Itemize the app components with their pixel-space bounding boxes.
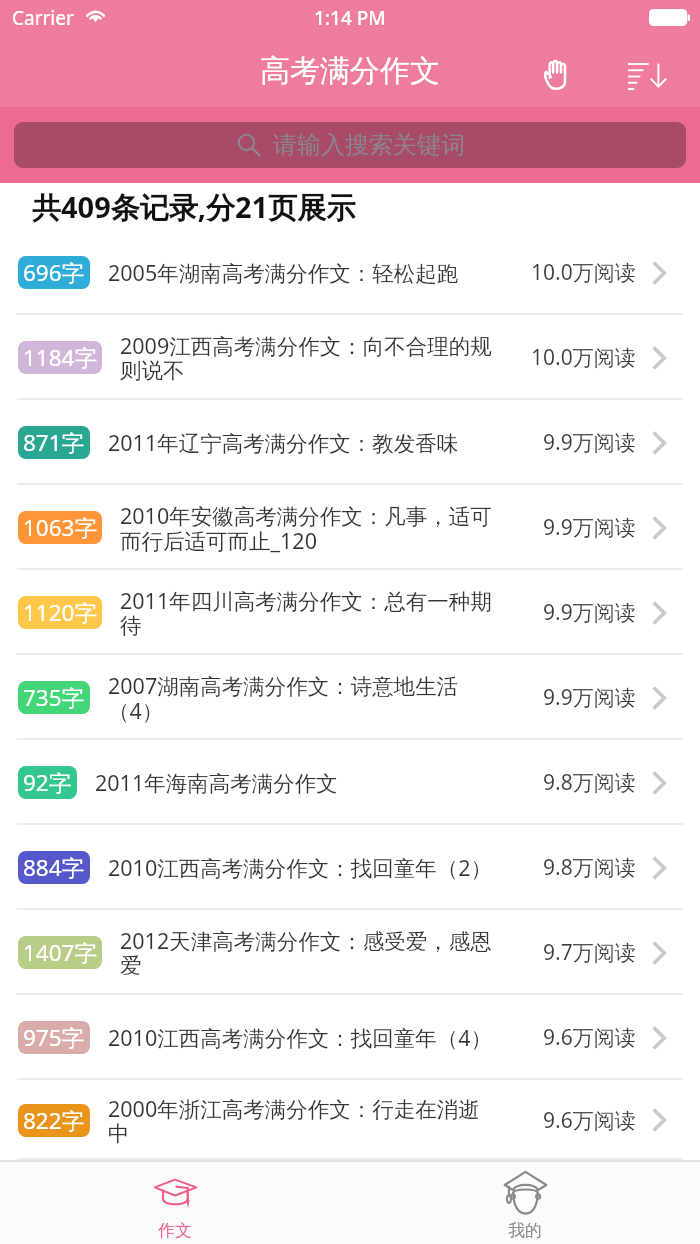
staticText: 9.8万阅读 xyxy=(543,853,636,882)
staticText: 作文 xyxy=(158,1220,192,1241)
staticText: 10.0万阅读 xyxy=(531,343,636,372)
staticText: 9.8万阅读 xyxy=(543,768,636,797)
staticText: 1407字 xyxy=(23,937,97,968)
staticText: 884字 xyxy=(23,852,85,883)
staticText: Carrier xyxy=(12,5,74,31)
staticText: 共409条记录,分21页展示 xyxy=(32,187,356,227)
staticText: 2010江西高考满分作文：找回童年（2） xyxy=(108,853,531,882)
staticText: 696字 xyxy=(23,257,85,288)
button[interactable]: 975字 xyxy=(0,995,700,1080)
staticText: 9.7万阅读 xyxy=(543,938,636,967)
staticText: 2010年安徽高考满分作文：凡事，适可 而行后适可而止_120 xyxy=(120,501,531,555)
staticText: 1184字 xyxy=(23,342,97,373)
staticText: 2009江西高考满分作文：向不合理的规 则说不 xyxy=(120,331,519,384)
staticText: 高考满分作文 xyxy=(260,52,440,90)
button[interactable]: Sort descending xyxy=(613,40,681,107)
button[interactable]: 我的 xyxy=(350,1162,700,1244)
staticText: 9.6万阅读 xyxy=(543,1023,636,1052)
staticText: 822字 xyxy=(23,1105,85,1136)
button[interactable]: 请输入搜索关键词 xyxy=(14,122,686,168)
staticText: 9.6万阅读 xyxy=(543,1106,636,1135)
staticText: 2000年浙江高考满分作文：行走在消逝 中 xyxy=(108,1094,531,1147)
staticText: 2011年辽宁高考满分作文：教发香味 xyxy=(108,428,531,457)
staticText: 871字 xyxy=(23,427,85,458)
staticText: 1063字 xyxy=(23,512,97,543)
staticText: 1:14 PM xyxy=(314,5,386,31)
staticText: 2011年四川高考满分作文：总有一种期 待 xyxy=(120,586,531,639)
button[interactable]: 作文 xyxy=(0,1162,350,1244)
staticText: 我的 xyxy=(508,1220,542,1241)
staticText: 9.9万阅读 xyxy=(543,428,636,457)
button[interactable]: 1407字 xyxy=(0,910,700,995)
staticText: 请输入搜索关键词 xyxy=(273,130,465,160)
button[interactable]: 735字 xyxy=(0,655,700,740)
button[interactable]: 1184字 xyxy=(0,315,700,400)
button[interactable]: 822字 xyxy=(0,1080,700,1160)
staticText: 2011年海南高考满分作文 xyxy=(95,768,531,797)
staticText: 1120字 xyxy=(23,597,97,628)
staticText: 2010江西高考满分作文：找回童年（4） xyxy=(108,1023,531,1052)
staticText: 2012天津高考满分作文：感受爱，感恩 爱 xyxy=(120,926,531,979)
staticText: 9.9万阅读 xyxy=(543,598,636,627)
staticText: 9.9万阅读 xyxy=(543,513,636,542)
staticText: 92字 xyxy=(23,767,72,798)
button[interactable]: 1120字 xyxy=(0,570,700,655)
button[interactable]: 1063字 xyxy=(0,485,700,570)
staticText: 975字 xyxy=(23,1022,85,1053)
staticText: 735字 xyxy=(23,682,85,713)
button[interactable]: Hand xyxy=(524,40,588,107)
button[interactable]: 884字 xyxy=(0,825,700,910)
staticText: 10.0万阅读 xyxy=(531,258,636,287)
staticText: 9.9万阅读 xyxy=(543,683,636,712)
staticText: 2007湖南高考满分作文：诗意地生活 （4） xyxy=(108,671,531,725)
staticText: 2005年湖南高考满分作文：轻松起跑 xyxy=(108,258,519,287)
button[interactable]: 696字 xyxy=(0,230,700,315)
button[interactable]: 92字 xyxy=(0,740,700,825)
button[interactable]: 871字 xyxy=(0,400,700,485)
